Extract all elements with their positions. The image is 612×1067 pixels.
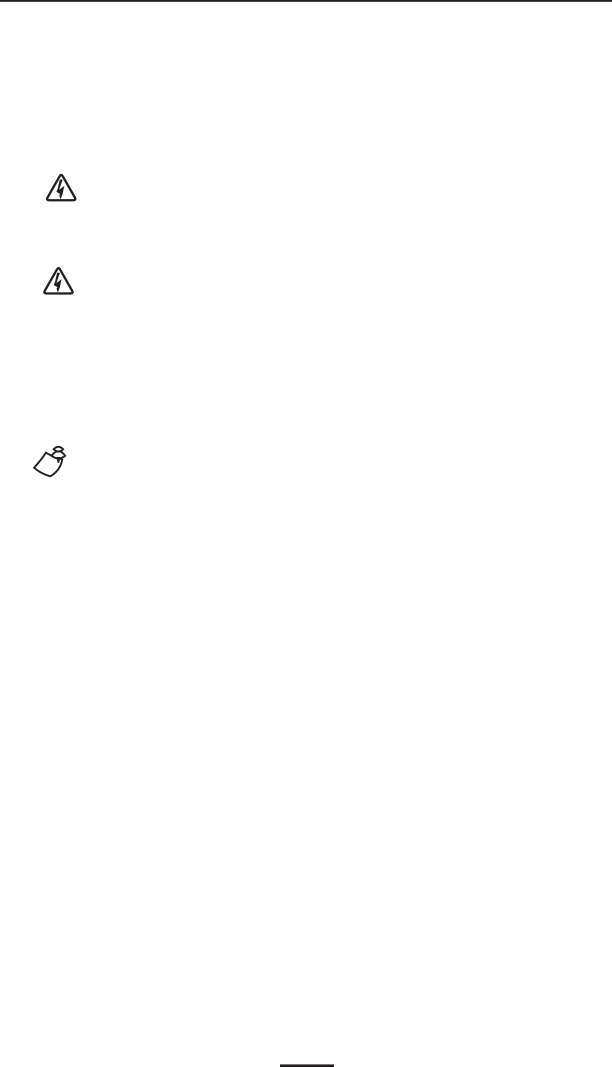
button[interactable]: Warning: dangerous voltage — [46, 172, 77, 201]
button[interactable]: Warning: dangerous voltage — [43, 266, 74, 295]
button[interactable]: Note — [32, 448, 66, 482]
